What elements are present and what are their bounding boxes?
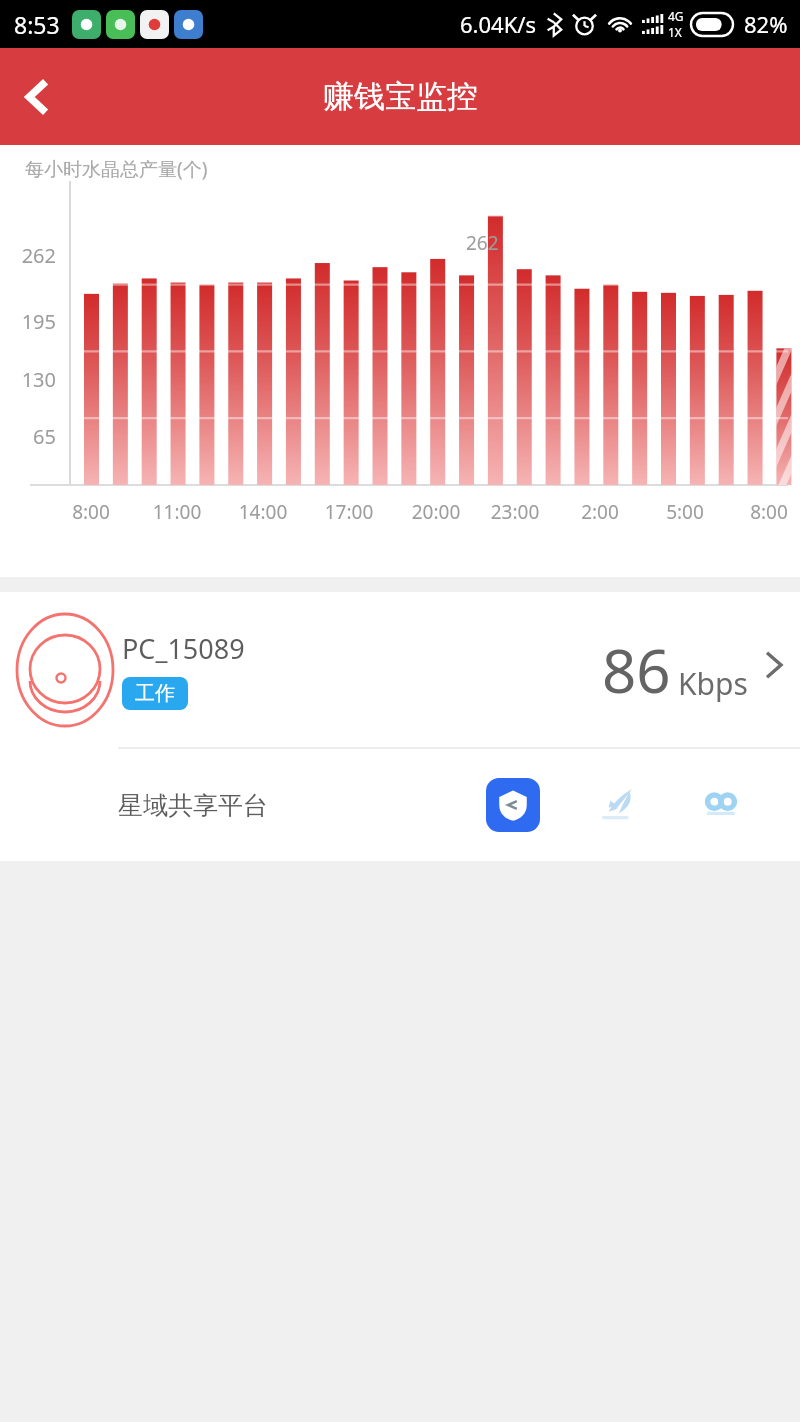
staticText: 8:00	[729, 499, 800, 525]
staticText: 4G	[668, 8, 684, 24]
staticText: PC_15089	[122, 630, 245, 667]
staticText: 11:00	[137, 499, 217, 525]
staticText: 1X	[668, 24, 682, 40]
staticText: 工作	[135, 681, 175, 706]
staticText: 5:00	[645, 499, 725, 525]
staticText: 82%	[744, 9, 788, 39]
button[interactable]: PC_15089	[0, 592, 800, 747]
staticText: 262	[0, 242, 56, 269]
button[interactable]: 迅雷赚钱宝	[486, 778, 540, 832]
staticText: Kbps	[678, 663, 748, 704]
staticText: 2:00	[560, 499, 640, 525]
staticText: 8:53	[14, 9, 60, 40]
staticText: 195	[0, 308, 56, 335]
staticText: 6.04K/s	[460, 9, 536, 39]
staticText: 130	[0, 366, 56, 393]
staticText: 17:00	[309, 499, 389, 525]
staticText: 20:00	[396, 499, 476, 525]
staticText: 65	[0, 423, 56, 450]
staticText: 赚钱宝监控	[323, 77, 478, 116]
staticText: 262	[466, 230, 499, 256]
staticText: 23:00	[475, 499, 555, 525]
staticText: 8:00	[51, 499, 131, 525]
button[interactable]: Back	[0, 59, 76, 135]
staticText: 星域共享平台	[118, 790, 268, 821]
button[interactable]: 无限平台	[694, 778, 748, 832]
button[interactable]: 星域加速	[590, 778, 644, 832]
staticText: 86	[602, 629, 671, 711]
staticText: 14:00	[223, 499, 303, 525]
staticText: 每小时水晶总产量(个)	[25, 156, 208, 182]
